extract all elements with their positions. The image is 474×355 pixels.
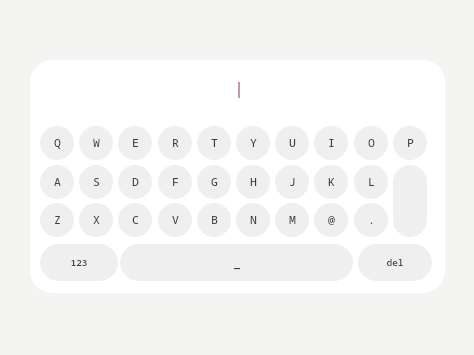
- button[interactable]: U: [275, 126, 309, 160]
- staticText: M: [289, 212, 296, 228]
- button[interactable]: Z: [40, 203, 74, 237]
- button[interactable]: J: [275, 165, 309, 199]
- staticText: D: [132, 174, 139, 190]
- button[interactable]: R: [158, 126, 192, 160]
- staticText: Z: [54, 212, 61, 228]
- button[interactable]: A: [40, 165, 74, 199]
- staticText: P: [407, 135, 414, 151]
- button[interactable]: P: [393, 126, 427, 160]
- button[interactable]: G: [197, 165, 231, 199]
- button[interactable]: M: [275, 203, 309, 237]
- button[interactable]: .: [354, 203, 388, 237]
- button[interactable]: C: [118, 203, 152, 237]
- staticText: G: [211, 174, 218, 190]
- button[interactable]: D: [118, 165, 152, 199]
- button[interactable]: @: [314, 203, 348, 237]
- staticText: Y: [250, 135, 257, 151]
- staticText: A: [54, 174, 61, 190]
- button[interactable]: L: [354, 165, 388, 199]
- button[interactable]: H: [236, 165, 270, 199]
- staticText: F: [172, 174, 179, 190]
- button[interactable]: W: [79, 126, 113, 160]
- button[interactable]: 123: [40, 244, 118, 281]
- staticText: L: [368, 174, 375, 190]
- staticText: S: [93, 174, 100, 190]
- button[interactable]: K: [314, 165, 348, 199]
- staticText: .: [368, 212, 375, 228]
- staticText: U: [289, 135, 296, 151]
- staticText: J: [289, 174, 296, 190]
- button[interactable]: E: [118, 126, 152, 160]
- staticText: O: [368, 135, 375, 151]
- staticText: C: [132, 212, 139, 228]
- button[interactable]: S: [79, 165, 113, 199]
- staticText: R: [172, 135, 179, 151]
- staticText: @: [328, 212, 335, 228]
- staticText: I: [328, 135, 335, 151]
- button[interactable]: Space: [120, 244, 353, 281]
- staticText: W: [93, 135, 100, 151]
- button[interactable]: T: [197, 126, 231, 160]
- button[interactable]: Y: [236, 126, 270, 160]
- staticText: X: [93, 212, 100, 228]
- staticText: K: [328, 174, 335, 190]
- staticText: B: [211, 212, 218, 228]
- staticText: N: [250, 212, 257, 228]
- staticText: T: [211, 135, 218, 151]
- button[interactable]: F: [158, 165, 192, 199]
- button[interactable]: X: [79, 203, 113, 237]
- button[interactable]: Enter: [393, 165, 427, 237]
- button[interactable]: Q: [40, 126, 74, 160]
- staticText: E: [132, 135, 139, 151]
- staticText: H: [250, 174, 257, 190]
- staticText: 123: [70, 256, 88, 269]
- staticText: V: [172, 212, 179, 228]
- staticText: del: [386, 256, 404, 269]
- button[interactable]: V: [158, 203, 192, 237]
- staticText: _: [234, 256, 240, 270]
- button[interactable]: del: [358, 244, 432, 281]
- button[interactable]: O: [354, 126, 388, 160]
- button[interactable]: N: [236, 203, 270, 237]
- button[interactable]: I: [314, 126, 348, 160]
- staticText: Q: [54, 135, 61, 151]
- button[interactable]: B: [197, 203, 231, 237]
